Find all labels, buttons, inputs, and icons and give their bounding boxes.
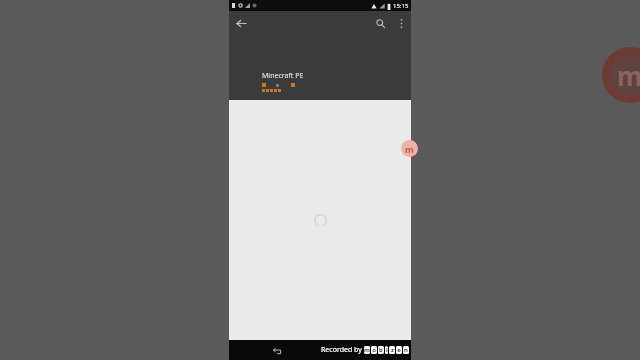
staticText: m [405, 143, 414, 155]
staticText: m [364, 346, 370, 354]
staticText: z [391, 346, 394, 354]
button[interactable]: Navigate up [229, 11, 253, 35]
staticText: Recorded by [321, 345, 362, 355]
staticText: b [379, 346, 383, 354]
staticText: m [617, 58, 640, 93]
staticText: Minecraft PE [262, 71, 304, 81]
staticText: o [372, 346, 376, 354]
staticText: i [386, 346, 388, 354]
button[interactable]: Mobizen recorder [401, 140, 418, 157]
button[interactable]: More options [391, 13, 411, 33]
button[interactable]: Back [269, 342, 285, 358]
button[interactable]: Search [369, 12, 391, 34]
staticText: 15:15 [393, 2, 409, 10]
staticText: n [404, 346, 408, 354]
staticText: e [397, 346, 401, 354]
